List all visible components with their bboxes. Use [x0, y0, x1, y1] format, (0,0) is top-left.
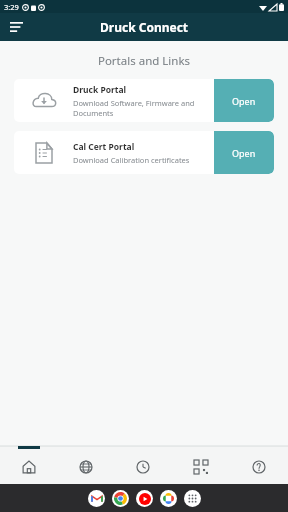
button[interactable]: Photos [160, 490, 177, 507]
staticText: Open [232, 95, 256, 107]
button[interactable]: Chrome [112, 490, 129, 507]
button[interactable]: History [114, 446, 172, 484]
button[interactable]: Scan QR code [172, 446, 230, 484]
button[interactable]: Cal Cert Portal [14, 131, 274, 174]
button[interactable]: Help [230, 446, 288, 484]
button[interactable]: All apps [184, 490, 201, 507]
staticText: 3:29 [4, 2, 19, 12]
button[interactable]: Open [214, 79, 274, 122]
staticText: Druck Portal [73, 84, 127, 96]
staticText: Open [232, 147, 256, 159]
button[interactable]: YouTube [136, 490, 153, 507]
button[interactable]: Open navigation menu [6, 17, 26, 37]
button[interactable]: Home [0, 446, 57, 484]
button[interactable]: Web portal [57, 446, 114, 484]
staticText: Portals and Links [0, 53, 288, 69]
button[interactable]: Druck Portal [14, 79, 274, 122]
staticText: Cal Cert Portal [73, 141, 135, 153]
button[interactable]: Gmail [88, 490, 105, 507]
staticText: Druck Connect [100, 19, 189, 35]
staticText: Download Software, Firmware and Document… [73, 98, 214, 118]
button[interactable]: Open [214, 131, 274, 174]
staticText: Download Calibration certificates [73, 155, 190, 165]
